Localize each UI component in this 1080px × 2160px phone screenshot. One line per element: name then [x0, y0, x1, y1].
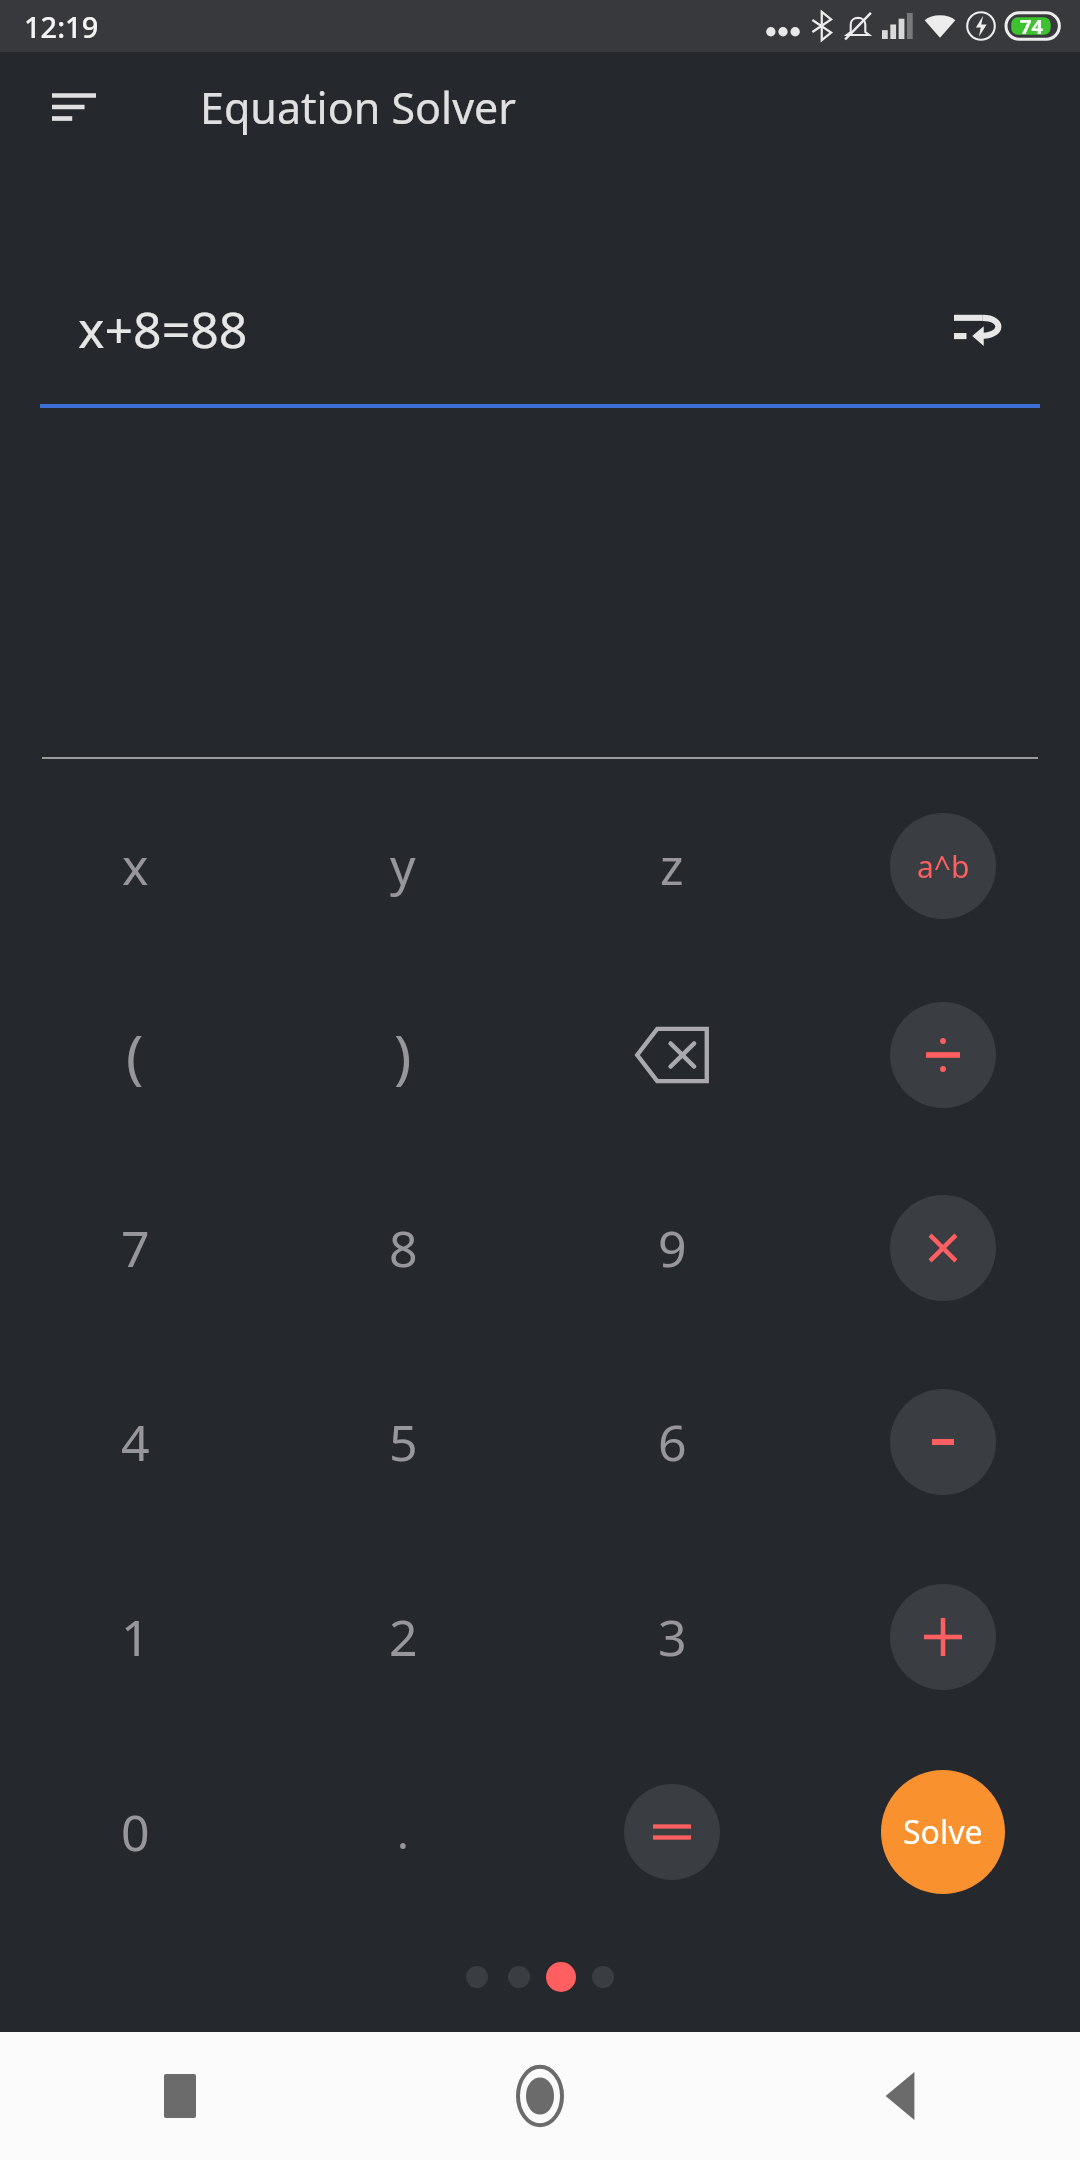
staticText: 0: [121, 1798, 150, 1866]
staticText: (: [126, 1016, 144, 1095]
button[interactable]: Page 3: [546, 1962, 576, 1992]
button[interactable]: 6: [602, 1382, 742, 1502]
button[interactable]: Enter: [938, 290, 1018, 370]
staticText: z: [660, 832, 684, 900]
button[interactable]: 2: [333, 1577, 473, 1697]
staticText: Solve: [903, 1810, 983, 1854]
staticText: 6: [658, 1408, 687, 1476]
button[interactable]: Plus: [890, 1584, 996, 1690]
staticText: 8: [389, 1214, 418, 1282]
button[interactable]: 3: [602, 1577, 742, 1697]
staticText: ): [394, 1016, 412, 1095]
button[interactable]: (: [65, 995, 205, 1115]
button[interactable]: Home: [360, 2032, 720, 2160]
button[interactable]: Page 1: [466, 1966, 488, 1988]
button[interactable]: Power: [890, 813, 996, 919]
staticText: 3: [658, 1603, 687, 1671]
button[interactable]: Page 4: [592, 1966, 614, 1988]
button[interactable]: 7: [65, 1188, 205, 1308]
button[interactable]: 4: [65, 1382, 205, 1502]
button[interactable]: Minus: [890, 1389, 996, 1495]
button[interactable]: Menu: [30, 63, 118, 151]
staticText: x: [122, 832, 149, 900]
button[interactable]: Multiply: [890, 1195, 996, 1301]
staticText: 2: [389, 1603, 418, 1671]
button[interactable]: Page 2: [508, 1966, 530, 1988]
staticText: x+8=88: [78, 295, 248, 363]
button[interactable]: y: [333, 806, 473, 926]
button[interactable]: Divide: [890, 1002, 996, 1108]
button[interactable]: Recents: [0, 2032, 360, 2160]
button[interactable]: x: [65, 806, 205, 926]
button[interactable]: z: [602, 806, 742, 926]
button[interactable]: 1: [65, 1577, 205, 1697]
button[interactable]: 8: [333, 1188, 473, 1308]
button[interactable]: Back: [720, 2032, 1080, 2160]
button[interactable]: ): [333, 995, 473, 1115]
staticText: 4: [121, 1408, 150, 1476]
button[interactable]: .: [333, 1772, 473, 1892]
staticText: 9: [658, 1214, 687, 1282]
staticText: Equation Solver: [200, 78, 517, 137]
staticText: 7: [121, 1214, 150, 1282]
staticText: 5: [389, 1408, 418, 1476]
button[interactable]: Backspace: [602, 995, 742, 1115]
button[interactable]: Solve: [881, 1770, 1005, 1894]
staticText: .: [397, 1802, 409, 1862]
button[interactable]: 5: [333, 1382, 473, 1502]
button[interactable]: 9: [602, 1188, 742, 1308]
staticText: 74: [1020, 13, 1043, 40]
button[interactable]: 0: [65, 1772, 205, 1892]
button[interactable]: Equals: [624, 1784, 720, 1880]
staticText: 12:19: [24, 7, 99, 46]
staticText: a^b: [917, 846, 970, 887]
staticText: y: [390, 832, 416, 900]
staticText: 1: [121, 1603, 150, 1671]
